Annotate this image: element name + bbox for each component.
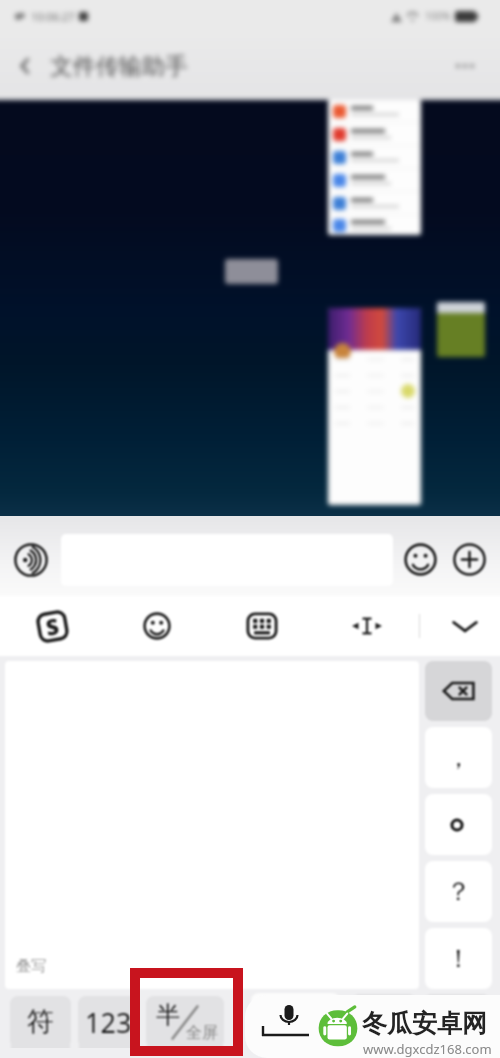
button[interactable] [437,302,485,357]
button[interactable]: Voice input [10,539,52,581]
button[interactable]: ？ [425,861,492,922]
button[interactable]: Back [8,49,42,83]
button[interactable]: Keyboard layout [222,596,302,656]
button[interactable]: Send [424,994,490,1046]
button[interactable]: Emoji [400,539,440,579]
button[interactable]: ， [425,727,492,788]
button[interactable]: More functions [449,539,489,579]
button[interactable]: Enter [352,994,416,1046]
staticText: 叠写 [16,957,46,976]
button[interactable]: 叠写 [5,661,419,989]
button[interactable]: Sogou input [12,596,92,656]
button[interactable]: 半 [146,996,224,1048]
button[interactable]: Voice input [251,993,340,1045]
staticText: ！ [446,943,471,974]
staticText: 全屏 [186,1023,218,1043]
button[interactable]: Voice input [251,994,340,1056]
button[interactable] [328,308,421,505]
button[interactable]: Backspace [425,661,492,721]
staticText: 冬瓜安卓网 [362,1008,487,1039]
button[interactable]: 123 [78,996,139,1048]
button[interactable]: Emoji [117,596,197,656]
staticText: S [43,610,61,642]
button[interactable]: Hide keyboard [425,596,500,656]
button[interactable]: ！ [425,928,492,989]
button[interactable]: More options [448,49,482,83]
staticText: 10:06:27 [31,9,75,24]
staticText: 符 [27,1005,54,1039]
staticText: ， [446,742,471,773]
button[interactable]: 符 [10,996,71,1048]
button[interactable]: Move cursor [327,596,407,656]
staticText: ？ [446,876,471,907]
staticText: 123 [85,1004,132,1041]
staticText: 文件传输助手 [50,52,188,81]
staticText: 100% [425,9,451,23]
button[interactable]: Full stop [425,794,492,855]
staticText: 半 [156,1000,180,1030]
staticText: www.dgxcdz168.com [363,1040,492,1058]
button[interactable] [328,100,421,235]
